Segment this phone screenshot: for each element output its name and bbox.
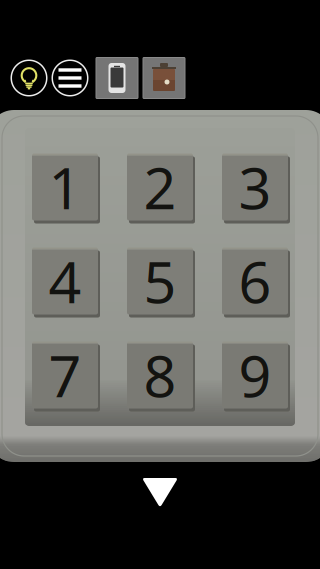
- button[interactable]: Hint: [10, 59, 48, 97]
- button[interactable]: 7: [31, 341, 99, 409]
- button[interactable]: 9: [221, 341, 289, 409]
- button[interactable]: 5: [126, 247, 194, 315]
- button[interactable]: 8: [126, 341, 194, 409]
- button[interactable]: 6: [221, 247, 289, 315]
- staticText: 7: [48, 337, 81, 413]
- button[interactable]: 2: [126, 153, 194, 221]
- button[interactable]: 3: [221, 153, 289, 221]
- staticText: 3: [238, 149, 271, 225]
- staticText: 5: [143, 243, 176, 319]
- staticText: 9: [238, 337, 271, 413]
- button[interactable]: Menu: [51, 59, 89, 97]
- button[interactable]: Bag: [143, 57, 185, 98]
- staticText: 8: [143, 337, 176, 413]
- button[interactable]: Go back: [142, 478, 177, 508]
- staticText: 2: [143, 149, 176, 225]
- button[interactable]: 1: [31, 153, 99, 221]
- button[interactable]: 4: [31, 247, 99, 315]
- staticText: 1: [48, 149, 81, 225]
- button[interactable]: Phone: [96, 57, 138, 98]
- staticText: 6: [238, 243, 271, 319]
- staticText: 4: [48, 243, 81, 319]
